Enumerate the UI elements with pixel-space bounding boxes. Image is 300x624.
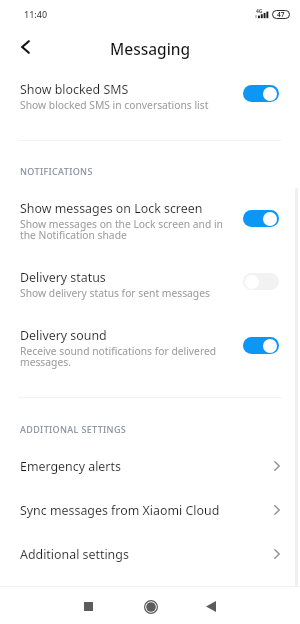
staticText: Show delivery status for sent messages — [20, 286, 210, 300]
button[interactable]: Toggle on — [243, 85, 279, 102]
staticText: 11:40 — [24, 8, 48, 20]
button[interactable]: Sync messages from Xiaomi Cloud — [0, 496, 300, 524]
staticText: Sync messages from Xiaomi Cloud — [20, 502, 274, 519]
staticText: Show blocked SMS — [20, 81, 129, 98]
staticText: Delivery status — [20, 269, 106, 286]
button[interactable]: Delivery sound — [0, 327, 300, 373]
staticText: Show messages on Lock screen — [20, 200, 203, 217]
button[interactable]: Back — [3, 28, 47, 66]
button[interactable]: Emergency alerts — [0, 452, 300, 480]
staticText: NOTIFICATIONS — [20, 165, 93, 177]
button[interactable]: Toggle on — [243, 337, 279, 354]
staticText: Additional settings — [20, 546, 274, 563]
button[interactable]: Show messages on Lock screen — [0, 200, 300, 246]
staticText: 47 — [277, 10, 285, 19]
button[interactable]: Toggle on — [243, 210, 279, 227]
button[interactable]: Recent apps — [66, 587, 110, 624]
staticText: Receive sound notifications for delivere… — [20, 344, 217, 369]
staticText: Show blocked SMS in conversations list — [20, 98, 209, 112]
staticText: 4G — [256, 8, 263, 15]
staticText: Show messages on the Lock screen and in … — [20, 217, 223, 242]
button[interactable]: Additional settings — [0, 540, 300, 568]
staticText: Messaging — [110, 38, 191, 59]
button[interactable]: Show blocked SMS — [0, 81, 300, 115]
staticText: ADDITIONAL SETTINGS — [20, 423, 127, 435]
staticText: Emergency alerts — [20, 458, 274, 475]
button[interactable]: Back — [189, 587, 233, 624]
button[interactable]: Toggle off — [243, 273, 279, 290]
staticText: Delivery sound — [20, 327, 107, 344]
button[interactable]: Home — [129, 587, 173, 624]
button[interactable]: Delivery status — [0, 269, 300, 303]
